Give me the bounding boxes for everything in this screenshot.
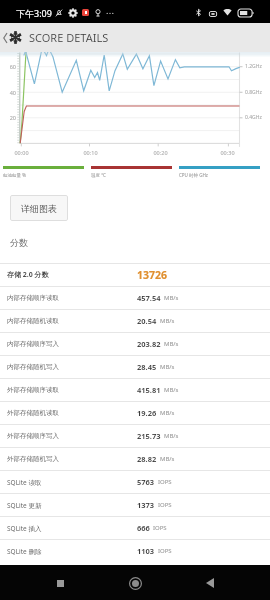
staticText: 外部存储随机读取	[7, 409, 59, 417]
staticText: MB/s	[164, 386, 179, 394]
button[interactable]: 外部存储随机读取	[0, 402, 270, 424]
staticText: 外部存储顺序写入	[7, 432, 59, 440]
staticText: 28.45	[137, 362, 157, 372]
staticText: SCORE DETAILS	[29, 30, 109, 45]
staticText: 内部存储随机写入	[7, 363, 59, 371]
staticText: 1373	[137, 500, 155, 510]
button[interactable]: Back	[0, 28, 9, 48]
staticText: 0.8GHz	[245, 89, 262, 96]
staticText: 外部存储随机写入	[7, 455, 59, 463]
staticText: 存储 2.0 分数	[7, 270, 49, 280]
staticText: MB/s	[160, 455, 175, 463]
staticText: 20.54	[137, 316, 157, 326]
staticText: IOPS	[158, 547, 172, 555]
staticText: IOPS	[153, 524, 167, 532]
staticText: MB/s	[164, 340, 179, 348]
staticText: 温度 °C	[91, 172, 106, 178]
button[interactable]: Back	[195, 568, 225, 598]
staticText: SQLite 读取	[7, 478, 42, 487]
button[interactable]: SQLite 插入	[0, 517, 270, 539]
staticText: 分数	[10, 237, 28, 248]
staticText: 00:10	[83, 149, 98, 156]
staticText: 28.82	[137, 454, 157, 464]
staticText: 457.54	[137, 293, 161, 303]
button[interactable]: 内部存储顺序写入	[0, 333, 270, 355]
staticText: MB/s	[164, 432, 179, 440]
staticText: 内部存储顺序写入	[7, 340, 59, 348]
staticText: CPU 时钟 GHz	[179, 172, 208, 178]
staticText: 1.2GHz	[245, 63, 262, 70]
staticText: 13726	[137, 268, 168, 282]
staticText: 00:30	[220, 149, 235, 156]
staticText: 215.73	[137, 431, 161, 441]
staticText: 1103	[137, 546, 155, 556]
staticText: MB/s	[160, 317, 175, 325]
staticText: 外部存储顺序读取	[7, 386, 59, 394]
staticText: 19.26	[137, 408, 157, 418]
staticText: 60	[9, 63, 16, 70]
staticText: SQLite 更新	[7, 501, 42, 510]
staticText: MB/s	[160, 363, 175, 371]
staticText: 内部存储随机读取	[7, 317, 59, 325]
button[interactable]: 内部存储顺序读取	[0, 287, 270, 309]
staticText: 下午3:09	[16, 7, 52, 19]
staticText: 203.82	[137, 339, 161, 349]
button[interactable]: Home	[120, 568, 150, 598]
staticText: MB/s	[160, 409, 175, 417]
staticText: 666	[137, 523, 150, 533]
staticText: 00:20	[153, 149, 168, 156]
button[interactable]: 存储 2.0 分数	[0, 264, 270, 286]
button[interactable]: SQLite 读取	[0, 471, 270, 493]
staticText: SQLite 插入	[7, 524, 42, 533]
staticText: IOPS	[158, 501, 172, 509]
staticText: 0.4GHz	[245, 114, 262, 121]
staticText: 内部存储顺序读取	[7, 294, 59, 302]
button[interactable]: 外部存储顺序读取	[0, 379, 270, 401]
staticText: 5763	[137, 477, 155, 487]
staticText: SQLite 删除	[7, 547, 42, 556]
staticText: 电池电量 %	[3, 172, 26, 178]
staticText: IOPS	[158, 478, 172, 486]
button[interactable]: Recents	[45, 568, 75, 598]
button[interactable]: 外部存储随机写入	[0, 448, 270, 470]
staticText: 00:00	[14, 149, 29, 156]
staticText: 40	[9, 89, 16, 96]
staticText: MB/s	[164, 294, 179, 302]
staticText: 详细图表	[21, 203, 57, 214]
button[interactable]: 内部存储随机写入	[0, 356, 270, 378]
button[interactable]: SQLite 更新	[0, 494, 270, 516]
button[interactable]: SQLite 删除	[0, 540, 270, 562]
button[interactable]: 内部存储随机读取	[0, 310, 270, 332]
button[interactable]: 外部存储顺序写入	[0, 425, 270, 447]
button[interactable]: 详细图表	[10, 195, 68, 221]
staticText: 20	[9, 114, 16, 121]
staticText: 415.81	[137, 385, 161, 395]
